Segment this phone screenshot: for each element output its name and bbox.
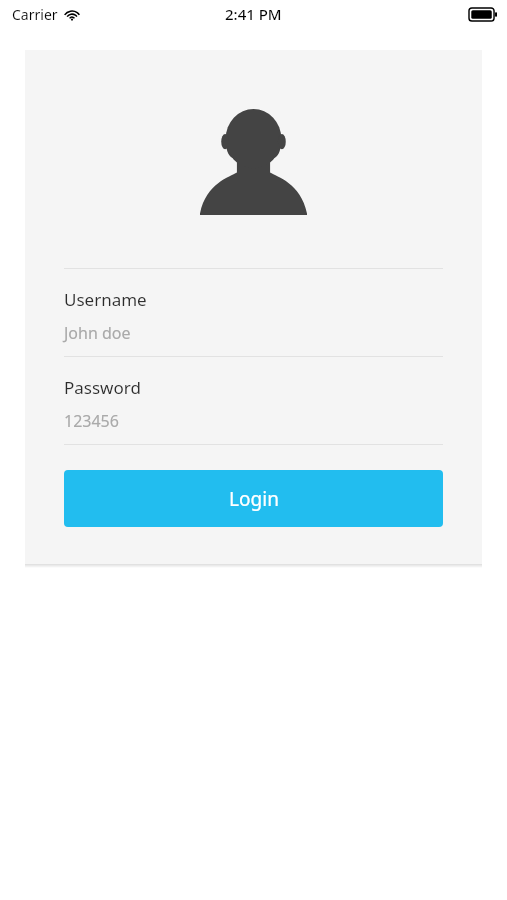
staticText: 2:41 PM xyxy=(225,4,282,24)
other: Profile avatar xyxy=(200,109,307,215)
staticText: 123456 xyxy=(64,410,119,432)
button[interactable]: Password xyxy=(25,357,482,444)
staticText: Carrier xyxy=(12,5,58,24)
button[interactable]: Login xyxy=(64,470,443,527)
staticText: Login xyxy=(229,486,279,512)
staticText: Password xyxy=(64,376,141,399)
staticText: John doe xyxy=(64,322,131,344)
staticText: Username xyxy=(64,288,147,311)
button[interactable]: Username xyxy=(25,269,482,356)
